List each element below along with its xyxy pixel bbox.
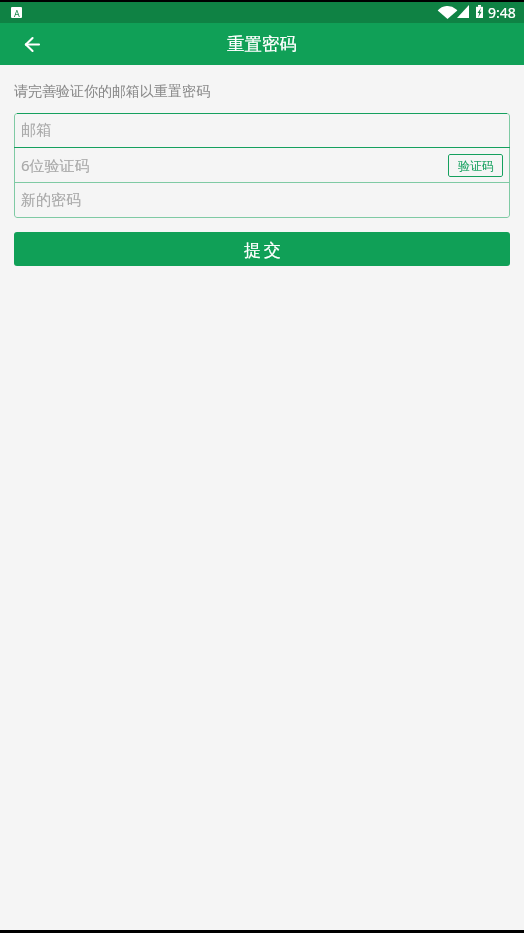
button[interactable]: 验证码 xyxy=(448,154,503,177)
staticText: 6位验证码 xyxy=(21,155,90,175)
staticText: 提 交 xyxy=(244,238,281,261)
button[interactable]: Back xyxy=(10,23,54,65)
button[interactable]: 提 交 xyxy=(14,232,510,266)
staticText: 邮箱 xyxy=(21,121,51,140)
staticText: A xyxy=(14,7,20,18)
button[interactable]: 邮箱 xyxy=(14,114,510,147)
staticText: 请完善验证你的邮箱以重置密码 xyxy=(14,83,210,101)
staticText: 重置密码 xyxy=(227,33,297,55)
staticText: 验证码 xyxy=(458,158,494,173)
button[interactable]: 新的密码 xyxy=(14,183,510,218)
button[interactable]: 6位验证码 xyxy=(14,148,510,182)
staticText: 新的密码 xyxy=(21,191,81,210)
staticText: 9:48 xyxy=(488,3,516,22)
